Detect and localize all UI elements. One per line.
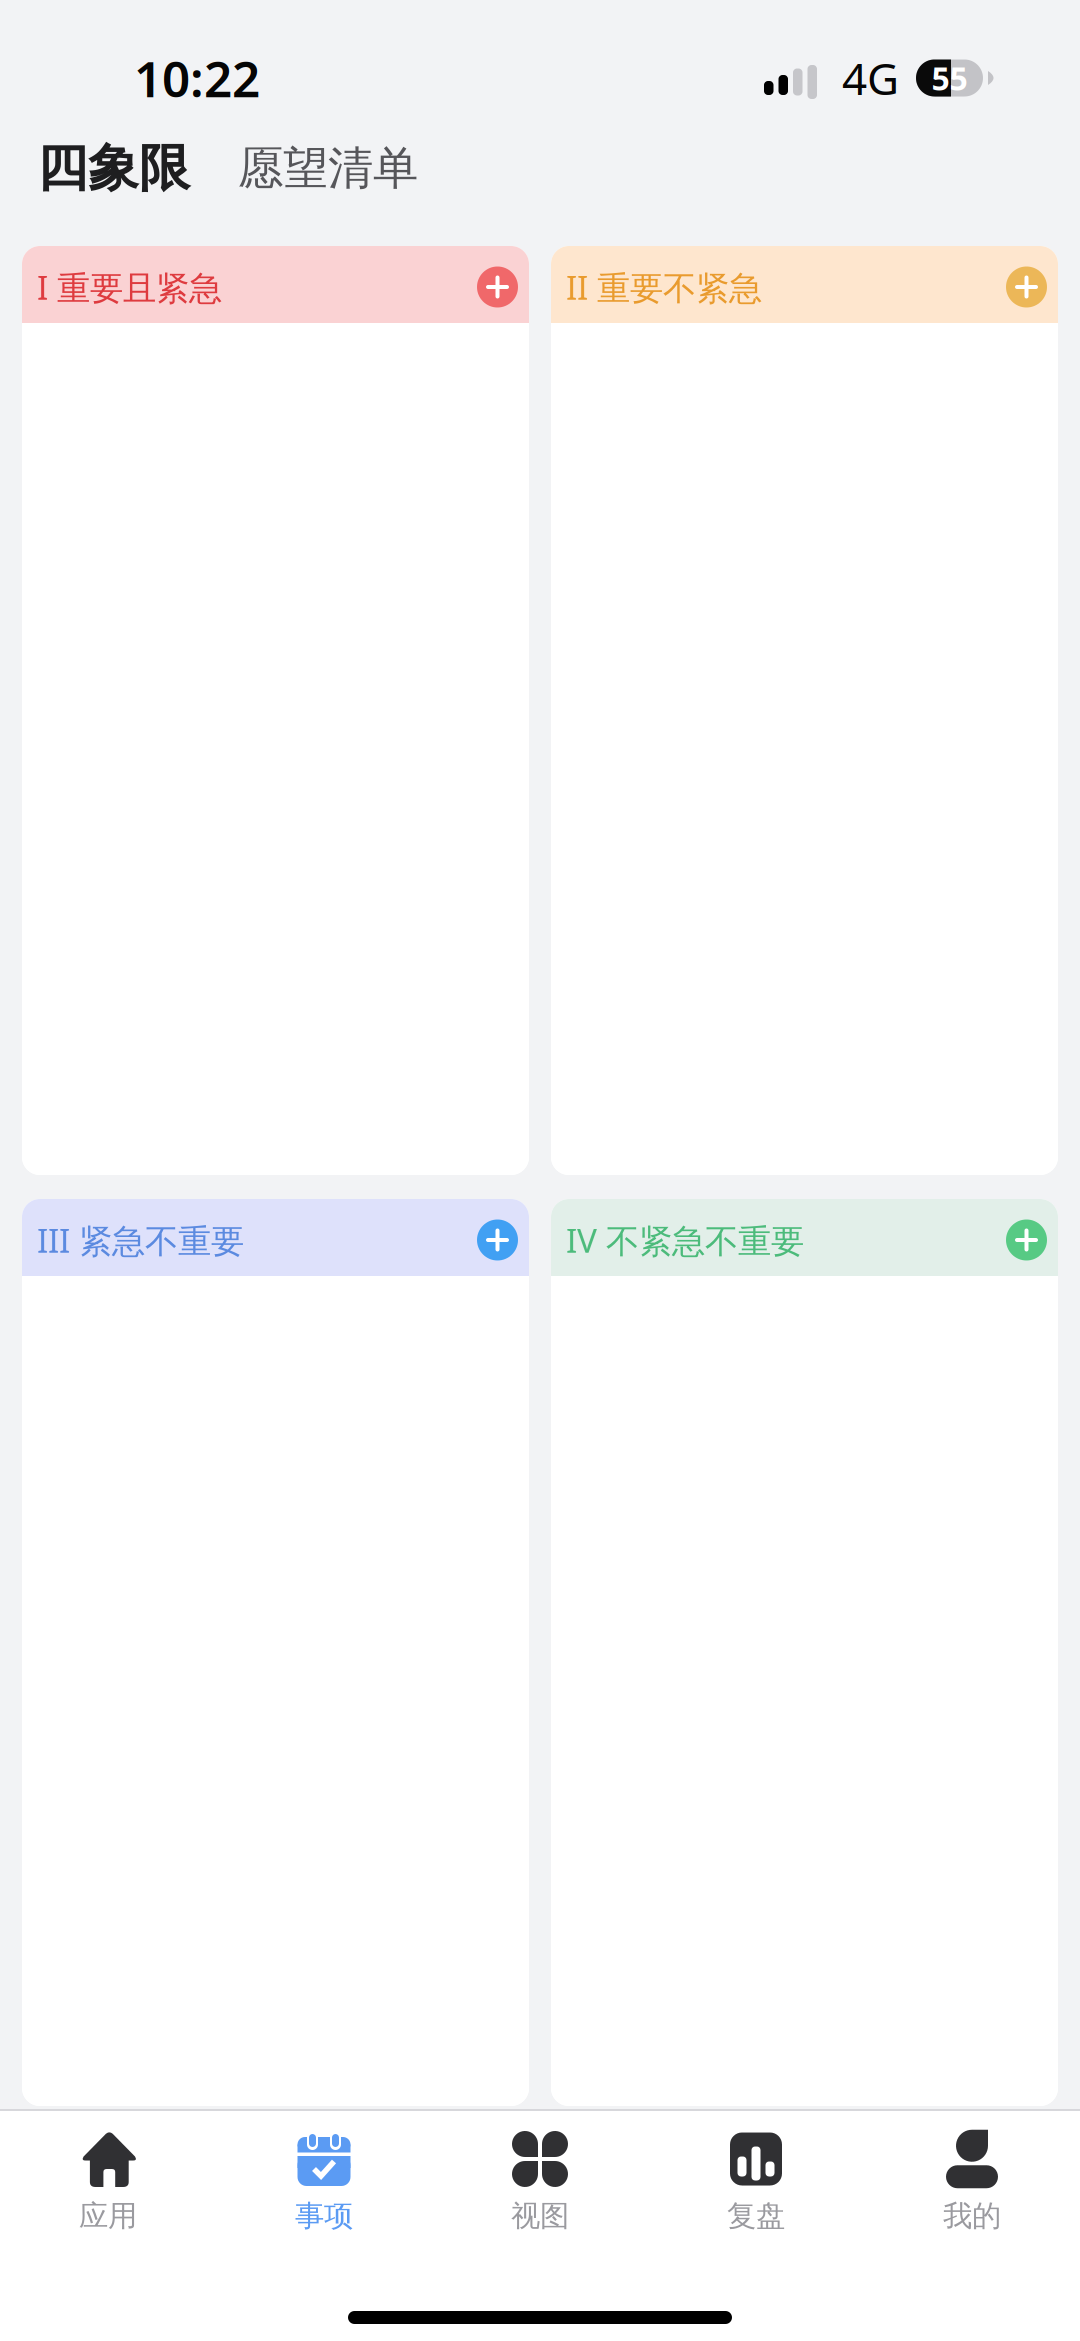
staticText: 55 [931,57,967,99]
button[interactable]: 新建重要且紧急事项 [477,266,518,307]
staticText: 应用 [79,2198,137,2234]
staticText: II 重要不紧急 [566,265,762,309]
button[interactable]: 应用 [0,2120,216,2252]
button[interactable]: 复盘 [648,2120,864,2252]
staticText: III 紧急不重要 [37,1218,244,1262]
staticText: IV 不紧急不重要 [566,1218,804,1262]
staticText: I 重要且紧急 [37,265,222,309]
staticText: 10:22 [134,45,260,111]
button[interactable]: 视图 [432,2120,648,2252]
button[interactable]: 新建不紧急不重要事项 [1006,1219,1047,1260]
button[interactable]: 新建紧急不重要事项 [477,1219,518,1260]
staticText: 复盘 [727,2198,785,2234]
button[interactable]: 新建重要不紧急事项 [1006,266,1047,307]
button[interactable]: 我的 [864,2120,1080,2252]
staticText: 视图 [511,2198,569,2234]
staticText: 4G [842,49,899,107]
staticText: 我的 [943,2198,1001,2234]
staticText: 事项 [295,2198,353,2234]
staticText: 愿望清单 [238,141,418,196]
button[interactable]: 事项 [216,2120,432,2252]
button[interactable]: 四象限 [37,137,190,200]
button[interactable]: 愿望清单 [238,141,418,196]
staticText: 四象限 [37,137,190,200]
